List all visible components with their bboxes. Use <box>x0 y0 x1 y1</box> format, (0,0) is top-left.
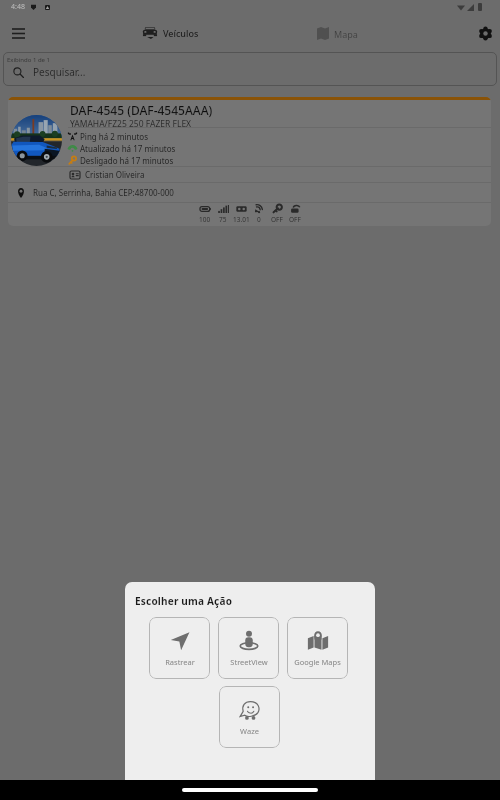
button[interactable]: StreetView <box>218 617 279 679</box>
staticText: 13.01 <box>233 215 250 224</box>
staticText: StreetView <box>230 657 268 667</box>
staticText: 0 <box>257 215 261 224</box>
staticText: OFF <box>271 215 283 224</box>
staticText: DAF-4545 (DAF-4545AAA) <box>70 102 213 118</box>
button[interactable]: Menu <box>0 15 36 51</box>
button[interactable]: Rastrear <box>149 617 210 679</box>
button[interactable]: Mapa <box>311 21 364 46</box>
button[interactable]: DAF-4545 (DAF-4545AAA) <box>8 97 491 226</box>
staticText: Exibindo 1 de 1 <box>7 56 50 64</box>
button[interactable]: Settings <box>470 18 500 48</box>
staticText: 75 <box>219 215 227 224</box>
staticText: 100 <box>199 215 211 224</box>
staticText: YAMAHA/FZ25 250 FAZER FLEX <box>70 118 192 130</box>
staticText: Rua C, Serrinha, Bahia CEP:48700-000 <box>33 187 174 198</box>
button[interactable]: Waze <box>219 686 280 748</box>
staticText: Desligado há 17 minutos <box>80 155 174 166</box>
staticText: Waze <box>240 726 259 736</box>
staticText: Veículos <box>163 27 199 39</box>
staticText: Google Maps <box>294 657 341 667</box>
button[interactable]: Google Maps <box>287 617 348 679</box>
staticText: Atualizado há 17 minutos <box>80 143 176 154</box>
staticText: Cristian Oliveira <box>85 169 145 180</box>
staticText: Rastrear <box>165 657 195 667</box>
staticText: Escolher uma Ação <box>135 594 233 608</box>
button[interactable]: Pesquisar... <box>3 52 497 86</box>
staticText: OFF <box>289 215 301 224</box>
staticText: Ping há 2 minutos <box>80 131 149 142</box>
staticText: Pesquisar... <box>33 65 86 79</box>
button[interactable]: Veículos <box>136 21 205 45</box>
staticText: Mapa <box>334 28 358 40</box>
staticText: 4:48 <box>11 2 25 12</box>
